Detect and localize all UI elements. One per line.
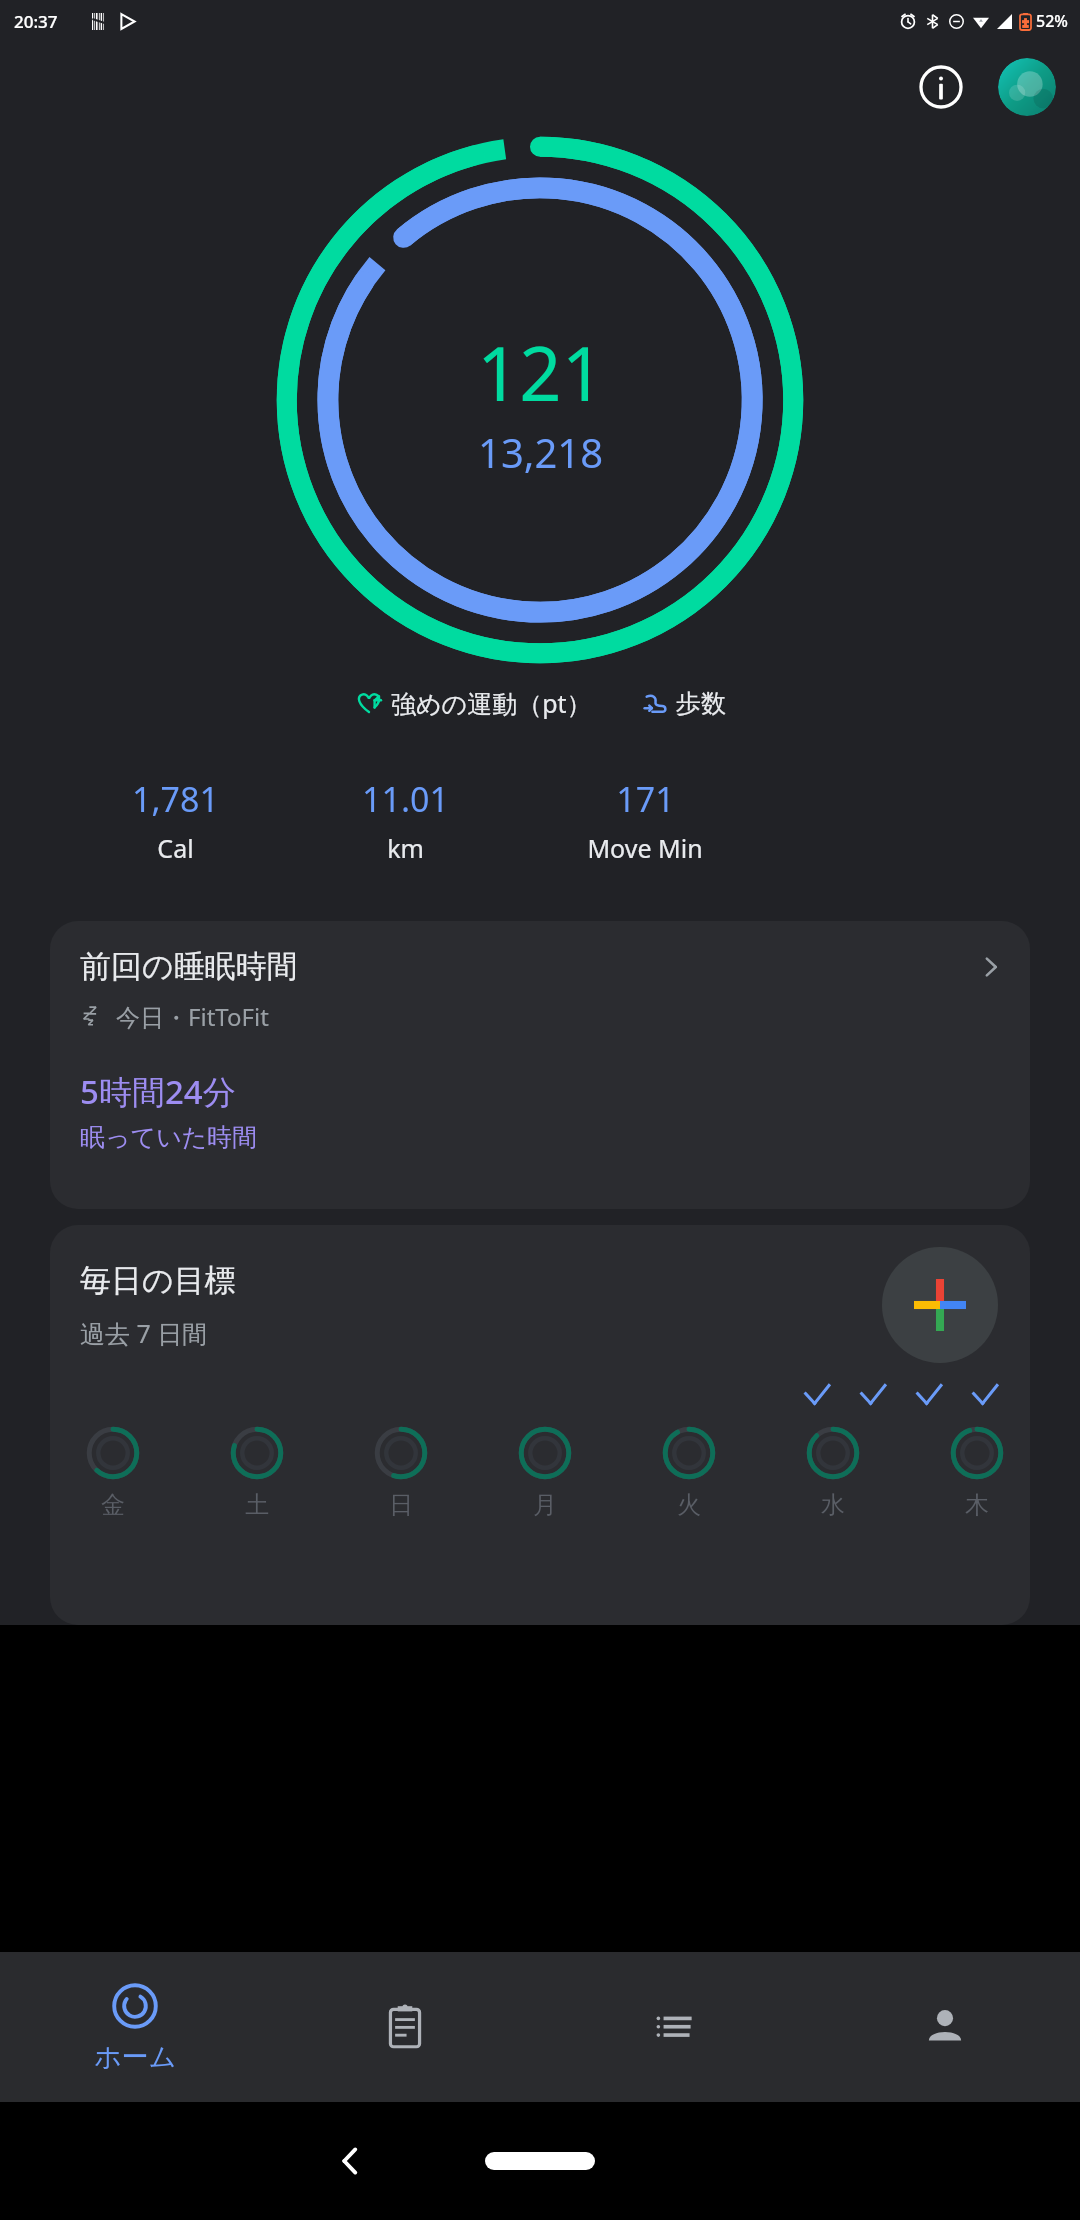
- button[interactable]: Info: [910, 56, 972, 118]
- staticText: 5時間24分: [80, 1069, 236, 1114]
- button[interactable]: 毎日の目標: [50, 1225, 1030, 1625]
- button[interactable]: 11.01: [290, 772, 520, 869]
- staticText: 171: [616, 776, 675, 822]
- staticText: 金: [101, 1490, 125, 1520]
- staticText: 過去 7 日間: [80, 1316, 208, 1350]
- staticText: ホーム: [94, 2040, 177, 2074]
- staticText: 52%: [1036, 10, 1068, 32]
- staticText: Cal: [157, 831, 194, 865]
- staticText: 1,781: [132, 776, 219, 822]
- button[interactable]: 歩数: [638, 684, 730, 723]
- staticText: km: [387, 831, 424, 865]
- staticText: Move Min: [587, 831, 703, 865]
- button[interactable]: Browse: [540, 1952, 810, 2102]
- staticText: 眠っていた時間: [80, 1122, 258, 1153]
- staticText: 毎日の目標: [80, 1261, 236, 1300]
- staticText: 歩数: [676, 688, 726, 719]
- button[interactable]: Profile: [810, 1952, 1080, 2102]
- button[interactable]: Profile: [998, 58, 1056, 116]
- staticText: 火: [677, 1490, 701, 1520]
- button[interactable]: 前回の睡眠時間: [50, 921, 1030, 1209]
- staticText: 今日・FitToFit: [116, 1000, 269, 1033]
- staticText: 木: [965, 1490, 989, 1520]
- staticText: 121: [477, 322, 604, 423]
- button[interactable]: ホーム: [0, 1952, 270, 2102]
- staticText: 強めの運動（pt）: [391, 686, 592, 720]
- staticText: 月: [533, 1490, 557, 1520]
- staticText: 20:37: [14, 10, 58, 33]
- staticText: 11.01: [362, 776, 449, 822]
- button[interactable]: Journal: [270, 1952, 540, 2102]
- button[interactable]: 強めの運動（pt）: [351, 682, 596, 724]
- button[interactable]: 1,781: [60, 772, 290, 869]
- staticText: 前回の睡眠時間: [80, 947, 976, 986]
- staticText: 水: [821, 1490, 845, 1520]
- button[interactable]: Add: [882, 1247, 998, 1363]
- staticText: 13,218: [478, 425, 604, 479]
- staticText: 日: [389, 1490, 413, 1520]
- button[interactable]: 171: [520, 772, 770, 869]
- staticText: 土: [245, 1490, 269, 1520]
